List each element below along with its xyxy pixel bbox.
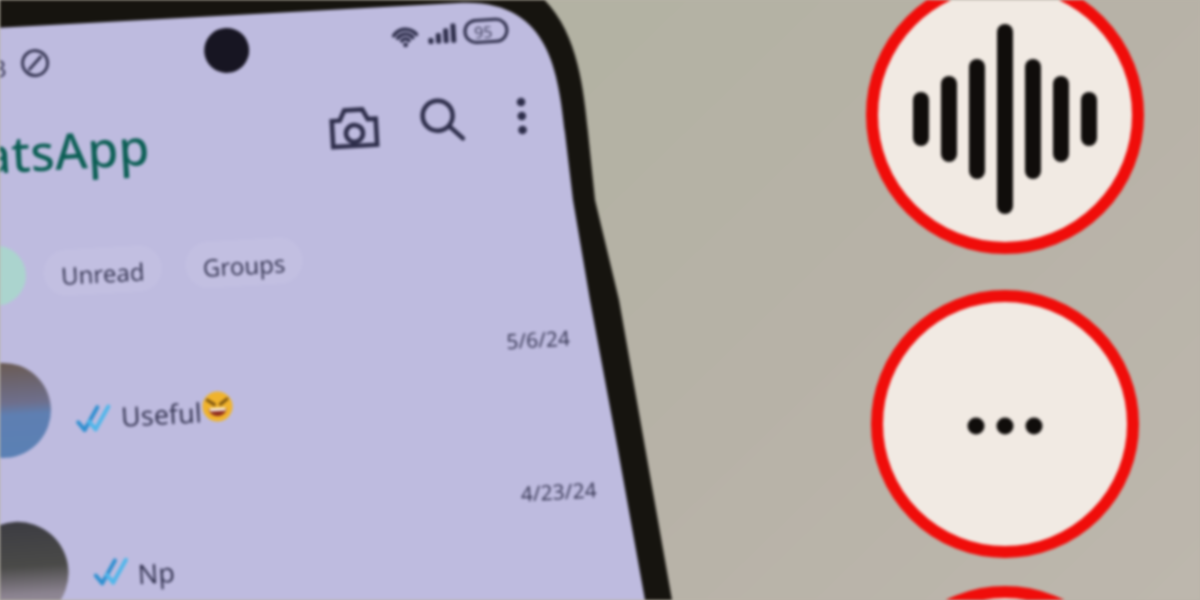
button[interactable]: Voice message options [0, 0, 1200, 600]
